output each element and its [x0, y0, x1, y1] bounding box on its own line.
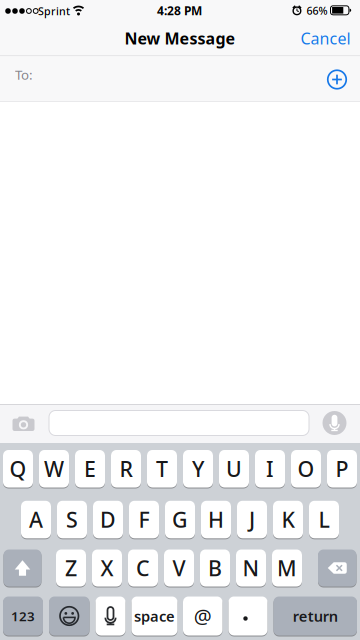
button[interactable]: . [228, 596, 267, 635]
button[interactable]: Numbers [3, 596, 43, 635]
button[interactable]: M [272, 549, 302, 586]
staticText: return [293, 606, 338, 626]
staticText: B [208, 554, 222, 582]
button[interactable]: F [129, 501, 159, 538]
staticText: V [172, 554, 185, 582]
staticText: G [172, 505, 188, 534]
button[interactable]: J [237, 501, 267, 538]
button[interactable]: Cancel [295, 23, 355, 53]
button[interactable]: Attach Photo [6, 406, 40, 440]
staticText: New Message [124, 28, 235, 49]
button[interactable]: S [57, 501, 87, 538]
staticText: H [208, 505, 224, 534]
button[interactable]: Record Audio [321, 410, 347, 436]
staticText: R [119, 455, 132, 483]
staticText: space [134, 606, 175, 626]
button[interactable]: H [201, 501, 231, 538]
staticText: S [66, 505, 78, 534]
button[interactable]: Dictate [95, 596, 125, 635]
button[interactable]: D [93, 501, 123, 538]
button[interactable]: C [128, 549, 158, 586]
staticText: Z [65, 554, 77, 582]
staticText: U [226, 455, 242, 483]
staticText: K [281, 505, 294, 534]
button[interactable]: V [164, 549, 194, 586]
staticText: L [318, 505, 329, 534]
button[interactable]: Add Contact [317, 59, 357, 99]
button[interactable]: Delete [318, 549, 356, 586]
staticText: 66% [306, 3, 327, 18]
staticText: 4:28 PM [157, 2, 202, 18]
button[interactable]: X [92, 549, 122, 586]
button[interactable]: space [131, 596, 177, 635]
staticText: C [136, 554, 150, 582]
staticText: @ [194, 603, 212, 629]
staticText: E [84, 455, 96, 483]
staticText: T [156, 455, 168, 483]
staticText: O [297, 455, 314, 483]
staticText: D [100, 505, 116, 534]
button[interactable]: N [236, 549, 266, 586]
button[interactable]: E [75, 450, 105, 487]
button[interactable]: L [309, 501, 339, 538]
button[interactable]: B [200, 549, 230, 586]
staticText: F [138, 505, 149, 534]
staticText: I [266, 455, 274, 483]
button[interactable]: @ [183, 596, 222, 635]
button[interactable]: R [111, 450, 141, 487]
staticText: 123 [11, 607, 35, 625]
button[interactable]: T [147, 450, 177, 487]
staticText: J [249, 505, 255, 534]
button[interactable]: G [165, 501, 195, 538]
staticText: Q [9, 455, 26, 483]
staticText: Cancel [300, 28, 350, 49]
staticText: W [44, 455, 64, 483]
button[interactable]: Z [56, 549, 86, 586]
button[interactable]: K [273, 501, 303, 538]
button[interactable]: Q [3, 450, 33, 487]
button[interactable]: O [291, 450, 321, 487]
button[interactable]: W [39, 450, 69, 487]
staticText: Sprint [38, 4, 70, 18]
button[interactable]: return [273, 596, 357, 635]
staticText: N [242, 554, 259, 582]
button[interactable]: U [219, 450, 249, 487]
button[interactable]: Emoji [49, 596, 89, 635]
staticText: To: [15, 66, 33, 83]
staticText: Y [192, 455, 204, 483]
staticText: X [100, 554, 113, 582]
button[interactable]: A [21, 501, 51, 538]
button[interactable]: Message [49, 410, 309, 435]
staticText: M [277, 554, 297, 582]
button[interactable]: P [327, 450, 357, 487]
button[interactable]: Y [183, 450, 213, 487]
button[interactable]: I [255, 450, 285, 487]
button[interactable]: Shift [3, 549, 41, 586]
staticText: A [29, 505, 43, 534]
staticText: P [335, 455, 348, 483]
